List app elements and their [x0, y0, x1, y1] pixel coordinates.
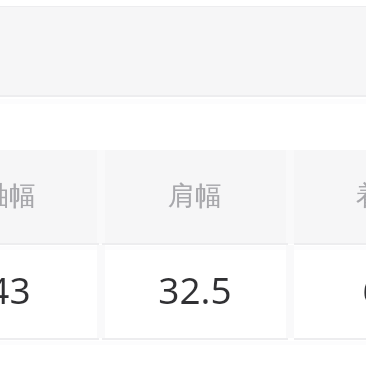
staticText: 肩幅: [168, 179, 222, 213]
staticText: 袖幅: [0, 179, 36, 213]
button[interactable]: 43: [0, 242, 99, 335]
button[interactable]: 袖幅: [0, 149, 99, 243]
staticText: 61: [362, 264, 366, 314]
staticText: 32.5: [158, 264, 232, 314]
button[interactable]: 肩幅: [102, 149, 288, 243]
staticText: 43: [0, 264, 31, 314]
button[interactable]: 着丈: [294, 149, 366, 243]
button[interactable]: 32.5: [102, 242, 288, 335]
button[interactable]: 61: [294, 242, 366, 335]
staticText: 着丈: [356, 179, 366, 213]
